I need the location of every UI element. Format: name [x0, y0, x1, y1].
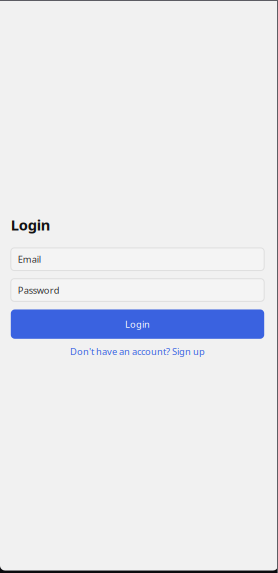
staticText: Login — [11, 215, 51, 234]
staticText: Email — [18, 253, 41, 265]
staticText: Login — [125, 318, 150, 330]
button[interactable]: Password — [11, 279, 264, 301]
staticText: Password — [18, 284, 60, 296]
staticText: Don't have an account? Sign up — [70, 345, 205, 358]
button[interactable]: Email — [11, 248, 264, 271]
button[interactable]: Login — [11, 309, 264, 339]
button[interactable]: Don't have an account? Sign up — [11, 345, 264, 358]
